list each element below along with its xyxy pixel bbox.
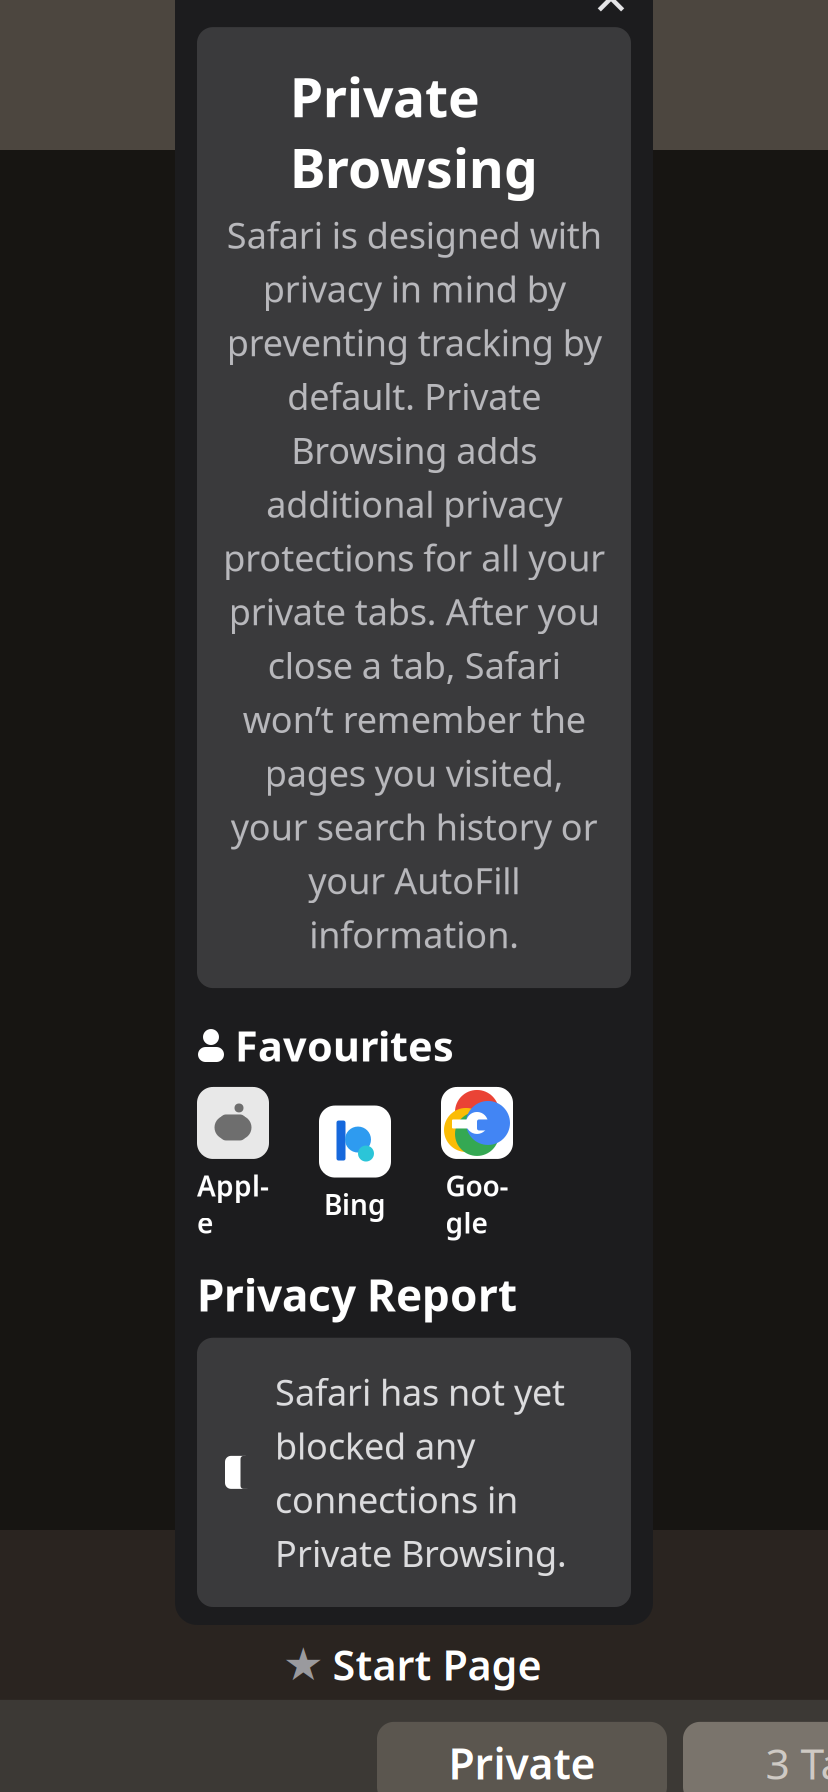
button[interactable]: Bing: [319, 1106, 391, 1223]
button[interactable]: 3 Tabs: [683, 1722, 828, 1792]
button[interactable]: Private: [377, 1722, 667, 1792]
staticText: Apple: [197, 1167, 269, 1241]
staticText: Start Page: [332, 1637, 541, 1692]
staticText: Privacy Report: [197, 1265, 517, 1324]
button[interactable]: Apple: [197, 1087, 269, 1241]
staticText: Private: [448, 1734, 595, 1791]
staticText: Favourites: [235, 1018, 454, 1073]
staticText: Safari has not yet blocked any connectio…: [275, 1368, 567, 1577]
staticText: 3 Tabs: [765, 1734, 828, 1791]
staticText: Private Browsing: [290, 61, 538, 203]
staticText: ★: [283, 1639, 324, 1690]
staticText: Bing: [324, 1186, 386, 1223]
button[interactable]: Safari has not yet blocked any connectio…: [197, 1338, 631, 1607]
staticText: Safari is designed with privacy in mind …: [223, 211, 605, 958]
button[interactable]: Close tab: [583, 0, 639, 27]
button[interactable]: ★: [286, 1625, 541, 1692]
staticText: Google: [445, 1167, 508, 1241]
button[interactable]: Google: [441, 1087, 513, 1241]
staticText: ✕: [592, 0, 630, 25]
